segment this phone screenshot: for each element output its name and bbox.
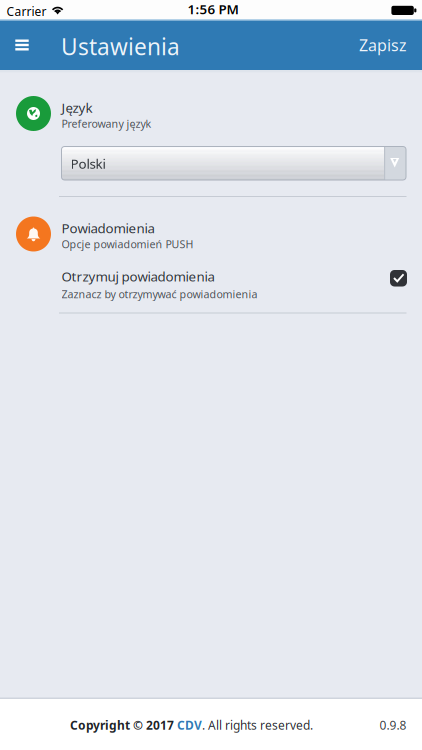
staticText: 1:56 PM <box>187 0 238 18</box>
staticText: Polski <box>70 155 105 172</box>
staticText: . All rights reserved. <box>202 717 313 733</box>
staticText: Copyright © 2017 <box>70 717 177 733</box>
staticText: Otrzymuj powiadomienia <box>61 267 214 285</box>
staticText: Język <box>61 99 92 116</box>
staticText: Carrier <box>6 3 46 19</box>
staticText: Ustawienia <box>61 31 180 61</box>
staticText: Opcje powiadomień PUSH <box>61 237 193 251</box>
staticText: 0.9.8 <box>379 717 406 733</box>
button[interactable]: Menu <box>4 25 40 65</box>
button[interactable]: Zapisz <box>344 29 407 61</box>
staticText: Powiadomienia <box>61 219 154 237</box>
button[interactable]: Otrzymuj powiadomienia <box>61 269 406 301</box>
staticText: Preferowany język <box>61 116 151 131</box>
staticText: CDV <box>177 717 202 733</box>
button[interactable]: Polski <box>61 146 406 180</box>
staticText: Zaznacz by otrzymywać powiadomienia <box>61 287 257 301</box>
staticText: Zapisz <box>359 34 407 56</box>
